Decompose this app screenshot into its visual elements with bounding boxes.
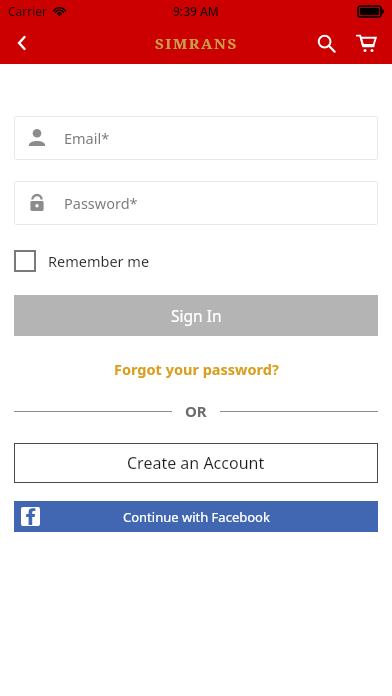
button[interactable]: Create an Account [14, 443, 378, 483]
button[interactable]: Back [0, 22, 44, 64]
button[interactable]: Email* [14, 116, 378, 160]
staticText: Sign In [171, 305, 222, 326]
button[interactable]: Cart [346, 23, 386, 63]
staticText: Continue with Facebook [123, 508, 270, 526]
staticText: OR [185, 401, 207, 421]
staticText: 9:39 AM [173, 3, 219, 19]
staticText: SIMRANS [155, 33, 238, 53]
staticText: Forgot your password? [114, 359, 279, 379]
button[interactable]: Search [306, 23, 346, 63]
staticText: Create an Account [127, 452, 265, 474]
staticText: Remember me [48, 251, 150, 271]
button[interactable]: Sign In [14, 295, 378, 336]
staticText: Password* [64, 193, 138, 213]
button[interactable]: Password* [14, 181, 378, 225]
staticText: Carrier [8, 3, 48, 19]
button[interactable]: Remember me [14, 247, 150, 275]
button[interactable]: Forgot your password? [104, 354, 289, 384]
staticText: Email* [64, 128, 110, 148]
button[interactable]: Continue with Facebook [14, 501, 378, 532]
